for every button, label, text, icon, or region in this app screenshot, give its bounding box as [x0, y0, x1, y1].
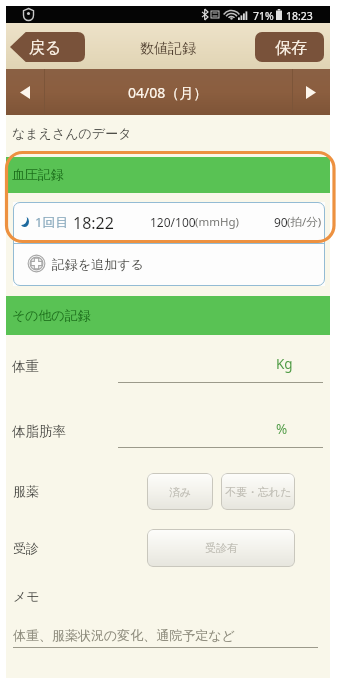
- staticText: 血圧記録: [12, 166, 64, 182]
- staticText: 保存: [275, 38, 307, 58]
- button[interactable]: 済み: [147, 473, 213, 510]
- staticText: 18:23: [286, 9, 313, 23]
- button[interactable]: 記録を追加する: [13, 244, 325, 286]
- staticText: 体重: [12, 358, 39, 375]
- staticText: 服薬: [13, 483, 39, 499]
- staticText: 体脂肪率: [12, 423, 66, 440]
- staticText: 1回目: [35, 213, 69, 231]
- staticText: 71%: [253, 9, 274, 23]
- staticText: (mmHg): [195, 214, 239, 230]
- staticText: 記録を追加する: [52, 256, 144, 272]
- staticText: 90: [274, 214, 288, 230]
- staticText: 04/08（月）: [128, 83, 208, 102]
- staticText: (拍/分): [287, 214, 322, 230]
- staticText: Kg: [276, 355, 293, 373]
- button[interactable]: 保存: [255, 32, 324, 62]
- staticText: 体重、服薬状況の変化、通院予定など: [13, 627, 235, 643]
- staticText: なまえさんのデータ: [12, 125, 132, 141]
- button[interactable]: 04/08（月）: [44, 69, 292, 115]
- button[interactable]: Previous day: [6, 69, 43, 115]
- staticText: 受診: [13, 540, 39, 556]
- staticText: 数値記録: [140, 40, 196, 58]
- staticText: %: [276, 420, 288, 438]
- button[interactable]: 血圧記録: [6, 157, 330, 193]
- button[interactable]: 1回目: [13, 202, 325, 243]
- staticText: 済み: [169, 485, 192, 499]
- staticText: その他の記録: [12, 307, 91, 323]
- staticText: 120/100: [150, 214, 196, 230]
- staticText: 受診有: [205, 541, 238, 555]
- button[interactable]: Next day: [292, 69, 330, 115]
- button[interactable]: 不要・忘れた: [221, 473, 295, 510]
- staticText: メモ: [13, 588, 40, 604]
- staticText: 18:22: [73, 212, 114, 234]
- staticText: 不要・忘れた: [225, 485, 292, 499]
- button[interactable]: 受診有: [147, 529, 295, 567]
- button[interactable]: 戻る: [10, 32, 85, 62]
- staticText: 戻る: [29, 38, 62, 58]
- button[interactable]: その他の記録: [6, 296, 330, 335]
